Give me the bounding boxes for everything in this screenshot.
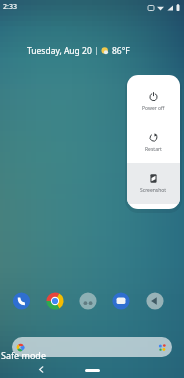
staticText: 86°F — [112, 45, 130, 57]
button[interactable] — [12, 337, 172, 357]
button[interactable]: Screenshot — [127, 163, 180, 204]
staticText: Safe mode — [1, 349, 46, 361]
staticText: Restart — [145, 146, 162, 153]
staticText: Power off — [142, 105, 165, 112]
staticText: Screenshot — [140, 187, 167, 194]
button[interactable]: Back — [36, 364, 47, 375]
button[interactable]: Restart — [127, 122, 180, 163]
staticText: 2:33 — [3, 2, 17, 12]
button[interactable]: Power off — [127, 81, 180, 122]
staticText: Tuesday, Aug 20 — [27, 45, 92, 57]
button[interactable]: Home — [85, 369, 100, 372]
